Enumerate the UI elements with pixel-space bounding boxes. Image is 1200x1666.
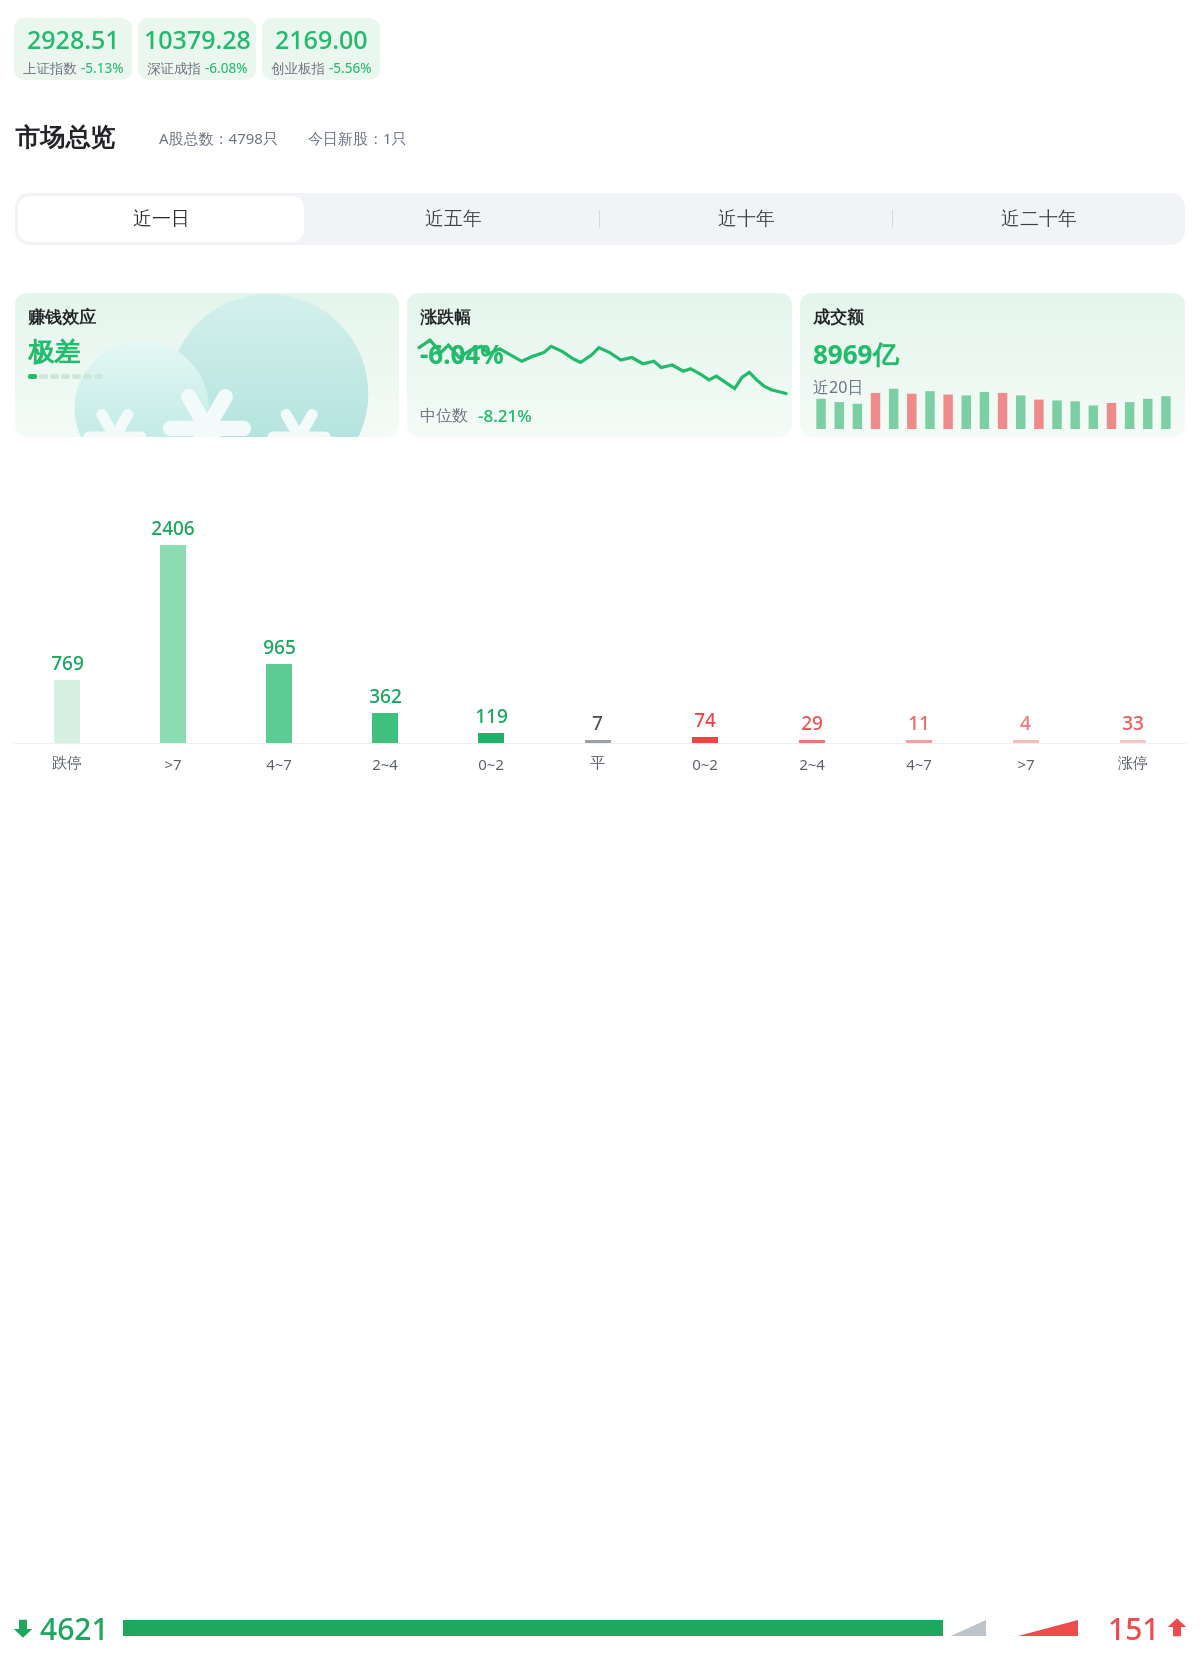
button[interactable]: 成交额 xyxy=(800,293,1185,437)
staticText: 赚钱效应 xyxy=(28,307,96,328)
button[interactable]: 近十年 xyxy=(600,193,892,245)
staticText: 769 xyxy=(51,650,84,676)
staticText: 0~2 xyxy=(692,754,718,774)
staticText: 119 xyxy=(475,703,508,729)
button[interactable]: Falling xyxy=(12,1598,1188,1658)
staticText: -6.04% xyxy=(420,336,504,371)
staticText: 涨停 xyxy=(1118,754,1148,773)
staticText: 成交额 xyxy=(813,307,864,328)
staticText: 8969亿 xyxy=(813,336,899,372)
staticText: 4621 xyxy=(40,1608,109,1649)
staticText: 创业板指 xyxy=(271,60,325,77)
staticText: 中位数 xyxy=(420,406,468,426)
staticText: 涨跌幅 xyxy=(420,307,471,328)
button[interactable]: 近一日 xyxy=(18,196,304,242)
staticText: 2406 xyxy=(151,515,195,541)
button[interactable]: 10379.28 xyxy=(138,18,256,80)
staticText: 2~4 xyxy=(372,754,398,774)
staticText: 4~7 xyxy=(266,754,292,774)
staticText: 上证指数 xyxy=(23,60,77,77)
button[interactable]: 赚钱效应 xyxy=(15,293,399,437)
staticText: -5.56% xyxy=(329,59,372,77)
staticText: 平 xyxy=(590,754,605,773)
staticText: 今日新股：1只 xyxy=(308,128,407,148)
staticText: 2169.00 xyxy=(275,22,368,56)
staticText: 29 xyxy=(801,710,823,736)
staticText: 4 xyxy=(1020,710,1031,736)
button[interactable]: 涨跌幅 xyxy=(407,293,792,437)
staticText: 965 xyxy=(263,634,296,660)
button[interactable]: 近五年 xyxy=(307,193,599,245)
staticText: -5.13% xyxy=(81,59,124,77)
staticText: A股总数：4798只 xyxy=(159,128,278,148)
staticText: 4~7 xyxy=(906,754,932,774)
staticText: 2928.51 xyxy=(27,22,120,56)
staticText: 近二十年 xyxy=(1001,207,1077,231)
staticText: 7 xyxy=(592,710,603,736)
staticText: 362 xyxy=(369,683,402,709)
staticText: 74 xyxy=(694,707,716,733)
button[interactable]: 近二十年 xyxy=(893,193,1185,245)
staticText: -6.08% xyxy=(205,59,248,77)
staticText: 0~2 xyxy=(478,754,504,774)
staticText: 跌停 xyxy=(52,754,82,773)
staticText: >7 xyxy=(164,754,182,774)
staticText: 近十年 xyxy=(718,207,775,231)
staticText: 市场总览 xyxy=(15,122,115,153)
staticText: 近一日 xyxy=(133,207,190,231)
button[interactable]: 2169.00 xyxy=(262,18,380,80)
button[interactable]: 2928.51 xyxy=(14,18,132,80)
staticText: -8.21% xyxy=(478,404,532,427)
staticText: 极差 xyxy=(28,336,80,369)
staticText: 近20日 xyxy=(813,376,864,398)
staticText: 11 xyxy=(908,710,930,736)
staticText: 深证成指 xyxy=(147,60,201,77)
staticText: 151 xyxy=(1108,1608,1160,1649)
other: Rising xyxy=(1166,1617,1188,1639)
other: Falling xyxy=(12,1617,34,1639)
staticText: >7 xyxy=(1017,754,1035,774)
staticText: 2~4 xyxy=(799,754,825,774)
staticText: 33 xyxy=(1122,710,1144,736)
staticText: 近五年 xyxy=(425,207,482,231)
staticText: 10379.28 xyxy=(144,22,251,56)
